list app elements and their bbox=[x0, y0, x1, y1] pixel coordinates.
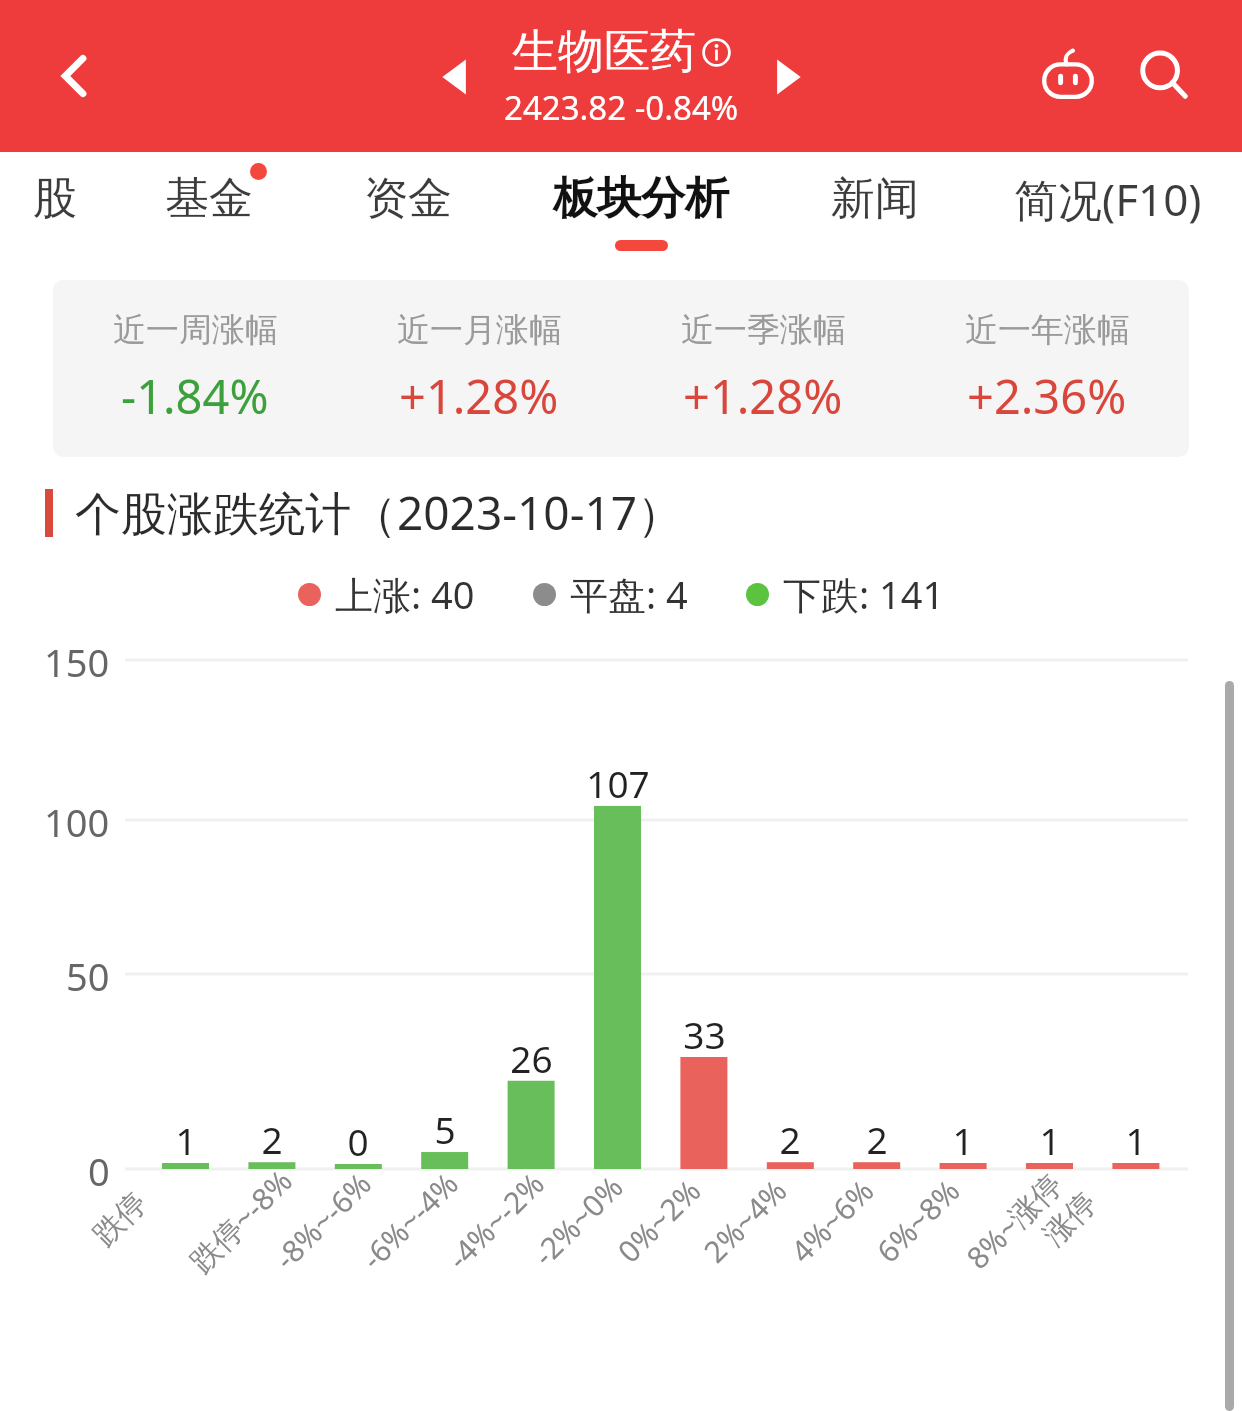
staticText: 6%~8% bbox=[867, 1170, 968, 1271]
staticText: 个股涨跌统计（2023-10-17） bbox=[75, 481, 684, 544]
staticText: 1 bbox=[1125, 1115, 1147, 1165]
staticText: 0%~2% bbox=[608, 1170, 709, 1271]
staticText: 5 bbox=[434, 1104, 456, 1154]
staticText: 1 bbox=[175, 1115, 197, 1165]
staticText: 50 bbox=[66, 950, 110, 1002]
staticText: 近一年涨幅 bbox=[965, 309, 1130, 351]
staticText: 1 bbox=[952, 1115, 974, 1165]
button[interactable]: 简况(F10) bbox=[974, 152, 1242, 270]
button[interactable]: 股 bbox=[0, 152, 109, 270]
staticText: 1 bbox=[1039, 1115, 1061, 1165]
staticText: 生物医药 bbox=[512, 23, 696, 81]
staticText: +1.28% bbox=[683, 364, 843, 428]
staticText: -1.84% bbox=[121, 364, 269, 428]
button[interactable]: Back bbox=[38, 39, 112, 113]
button[interactable]: Search bbox=[1116, 28, 1212, 124]
button[interactable]: 板块分析 bbox=[507, 152, 775, 270]
staticText: +1.28% bbox=[399, 364, 559, 428]
button[interactable]: 平盘: 4 bbox=[533, 568, 688, 620]
staticText: 近一季涨幅 bbox=[681, 309, 846, 351]
staticText: 2 bbox=[779, 1114, 801, 1164]
staticText: 简况(F10) bbox=[1014, 169, 1202, 229]
button[interactable]: Next sector bbox=[739, 29, 835, 125]
staticText: -4%~-2% bbox=[438, 1163, 553, 1278]
staticText: 板块分析 bbox=[553, 171, 729, 226]
staticText: 跌停~-8% bbox=[180, 1160, 301, 1281]
staticText: -6%~-4% bbox=[352, 1163, 467, 1278]
staticText: 100 bbox=[44, 796, 110, 848]
staticText: 近一月涨幅 bbox=[397, 309, 562, 351]
staticText: 涨停 bbox=[1035, 1184, 1105, 1254]
staticText: 2 bbox=[866, 1114, 888, 1164]
staticText: 资金 bbox=[364, 171, 452, 226]
staticText: 新闻 bbox=[831, 171, 919, 226]
staticText: 107 bbox=[586, 758, 650, 808]
staticText: 基金 bbox=[165, 171, 253, 226]
staticText: 2%~4% bbox=[694, 1170, 795, 1271]
button[interactable]: Previous sector bbox=[408, 29, 504, 125]
button[interactable]: 基金 bbox=[109, 152, 308, 270]
button[interactable]: 上涨: 40 bbox=[298, 568, 475, 620]
button[interactable]: 下跌: 141 bbox=[746, 568, 945, 620]
staticText: 150 bbox=[44, 636, 110, 688]
staticText: +2.36% bbox=[967, 364, 1127, 428]
staticText: 2 bbox=[261, 1114, 283, 1164]
button[interactable]: 资金 bbox=[308, 152, 507, 270]
staticText: 跌停 bbox=[85, 1184, 155, 1254]
button[interactable]: 近一周涨幅 bbox=[53, 280, 1189, 457]
staticText: -2%~0% bbox=[524, 1167, 631, 1274]
staticText: 平盘: 4 bbox=[570, 568, 688, 620]
staticText: 33 bbox=[683, 1009, 726, 1059]
staticText: 下跌: 141 bbox=[783, 568, 945, 620]
staticText: 上涨: 40 bbox=[335, 568, 475, 620]
staticText: 4%~6% bbox=[781, 1170, 882, 1271]
staticText: 26 bbox=[510, 1033, 553, 1083]
staticText: 0 bbox=[88, 1145, 110, 1197]
staticText: 0 bbox=[347, 1116, 369, 1166]
button[interactable]: 新闻 bbox=[775, 152, 974, 270]
button[interactable]: AI assistant bbox=[1020, 28, 1116, 124]
staticText: -8%~-6% bbox=[265, 1163, 380, 1278]
staticText: 近一周涨幅 bbox=[113, 309, 278, 351]
staticText: 8%~涨停 bbox=[957, 1164, 1071, 1277]
staticText: 2423.82 -0.84% bbox=[504, 85, 739, 130]
staticText: 股 bbox=[33, 171, 77, 226]
